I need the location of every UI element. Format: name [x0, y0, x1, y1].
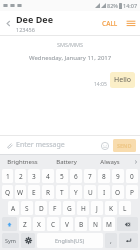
staticText: CALL	[102, 19, 118, 28]
button[interactable]: 5	[56, 169, 68, 183]
button[interactable]: Emoji	[99, 140, 110, 151]
button[interactable]: 7	[84, 169, 96, 183]
button[interactable]: W	[15, 185, 26, 199]
button[interactable]: Q	[2, 185, 13, 199]
staticText: A	[11, 204, 16, 213]
button[interactable]: M	[103, 217, 115, 231]
staticText: S	[25, 204, 29, 213]
staticText: Battery	[56, 158, 77, 166]
staticText: N	[93, 220, 98, 229]
staticText: B	[79, 220, 84, 229]
button[interactable]: Attach	[4, 140, 14, 150]
button[interactable]: H	[77, 201, 89, 215]
staticText: V	[65, 220, 69, 229]
staticText: L	[123, 204, 127, 213]
button[interactable]: SEND	[113, 139, 136, 152]
staticText: K	[109, 204, 114, 213]
button[interactable]: E	[28, 185, 40, 199]
staticText: Sym	[5, 237, 16, 244]
staticText: M	[106, 220, 112, 229]
button[interactable]: F	[49, 201, 61, 215]
button[interactable]: R	[42, 185, 54, 199]
button[interactable]: 0	[126, 169, 138, 183]
button[interactable]: I	[98, 185, 110, 199]
button[interactable]: 1	[2, 169, 13, 183]
button[interactable]: L	[119, 201, 131, 215]
button[interactable]: B	[75, 217, 87, 231]
button[interactable]: 3	[28, 169, 40, 183]
staticText: 6	[74, 172, 78, 181]
button[interactable]: Backspace	[117, 217, 138, 231]
button[interactable]: 9	[112, 169, 124, 183]
staticText: E	[32, 188, 36, 197]
button[interactable]: Battery	[44, 155, 88, 168]
button[interactable]: More suggestions	[132, 155, 140, 168]
button[interactable]: K	[105, 201, 117, 215]
button[interactable]: Shift	[2, 217, 17, 231]
button[interactable]: C	[47, 217, 59, 231]
staticText: Brightness	[7, 158, 38, 166]
staticText: 8	[102, 172, 106, 181]
button[interactable]: Y	[70, 185, 82, 199]
staticText: C	[51, 220, 56, 229]
staticText: X	[37, 220, 41, 229]
staticText: O	[115, 188, 121, 197]
staticText: P	[130, 188, 134, 197]
staticText: Dee Dee	[16, 13, 54, 25]
button[interactable]: S	[21, 201, 33, 215]
button[interactable]: O	[112, 185, 124, 199]
staticText: T	[60, 188, 64, 197]
button[interactable]: P	[126, 185, 138, 199]
staticText: 123456	[16, 26, 35, 33]
button[interactable]: X	[33, 217, 45, 231]
button[interactable]: Brightness	[0, 155, 44, 168]
button[interactable]: Settings	[21, 233, 35, 248]
button[interactable]: English(US)	[37, 233, 103, 248]
staticText: 0	[130, 172, 134, 181]
button[interactable]: Sym	[2, 233, 19, 248]
button[interactable]: Always	[88, 155, 132, 168]
staticText: Wednesday, January 11, 2017	[29, 54, 112, 62]
staticText: D	[39, 204, 44, 213]
staticText: Z	[23, 220, 27, 229]
button[interactable]: CALL	[98, 15, 122, 32]
staticText: H	[81, 204, 86, 213]
staticText: SEND	[117, 142, 132, 149]
button[interactable]: Z	[19, 217, 31, 231]
button[interactable]: D	[35, 201, 47, 215]
button[interactable]: G	[63, 201, 75, 215]
staticText: U	[88, 188, 93, 197]
button[interactable]: V	[61, 217, 73, 231]
button[interactable]: 6	[70, 169, 82, 183]
button[interactable]: J	[91, 201, 103, 215]
staticText: Q	[5, 188, 11, 197]
staticText: F	[53, 204, 57, 213]
staticText: 9	[116, 172, 120, 181]
button[interactable]: Enter message	[16, 140, 99, 150]
button[interactable]: Enter	[119, 233, 138, 248]
button[interactable]: 2	[15, 169, 26, 183]
button[interactable]: A	[8, 201, 19, 215]
button[interactable]: More options	[122, 11, 140, 35]
staticText: 2	[19, 172, 23, 181]
button[interactable]: ,	[105, 233, 117, 248]
button[interactable]: 8	[98, 169, 110, 183]
staticText: SMS/MMS	[57, 41, 84, 48]
staticText: Y	[74, 188, 78, 197]
staticText: 14:07	[123, 2, 138, 9]
button[interactable]: 4	[42, 169, 54, 183]
staticText: 3	[32, 172, 36, 181]
staticText: Hello	[114, 75, 131, 85]
button[interactable]: Hello	[110, 72, 135, 88]
staticText: English(US)	[55, 237, 85, 244]
button[interactable]: U	[84, 185, 96, 199]
staticText: Always	[100, 158, 120, 166]
staticText: W	[17, 188, 24, 197]
staticText: 82%	[107, 2, 118, 9]
staticText: G	[67, 204, 72, 213]
button[interactable]: T	[56, 185, 68, 199]
button[interactable]: N	[89, 217, 101, 231]
staticText: I	[103, 188, 106, 197]
staticText: 4	[46, 172, 50, 181]
button[interactable]: Back	[0, 11, 16, 35]
